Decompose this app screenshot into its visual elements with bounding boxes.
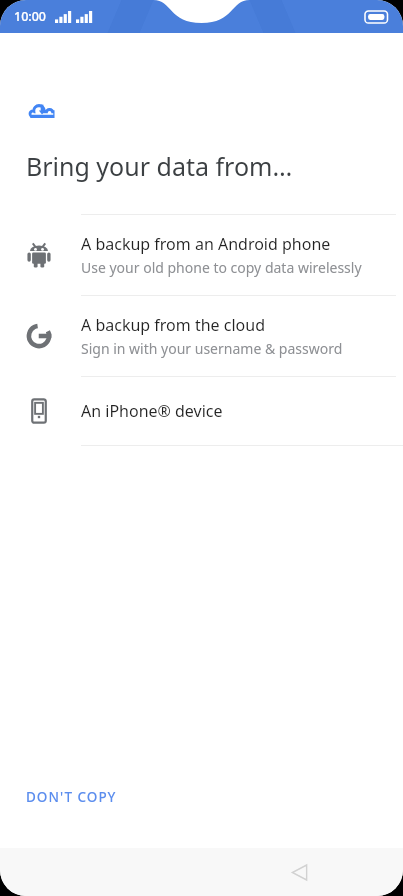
button[interactable]: DON'T COPY xyxy=(0,772,143,822)
staticText: Use your old phone to copy data wireless… xyxy=(81,258,362,277)
staticText: A backup from the cloud xyxy=(81,314,265,336)
staticText: A backup from an Android phone xyxy=(81,233,331,255)
button[interactable]: Back xyxy=(277,850,321,894)
button[interactable]: An iPhone® device xyxy=(0,377,403,445)
staticText: DON'T COPY xyxy=(26,788,117,806)
staticText: 10:00 xyxy=(14,8,47,25)
staticText: Bring your data from… xyxy=(26,149,293,183)
staticText: Sign in with your username & password xyxy=(81,339,343,358)
button[interactable]: A backup from the cloud xyxy=(0,296,403,376)
staticText: An iPhone® device xyxy=(81,400,223,422)
button[interactable]: A backup from an Android phone xyxy=(0,215,403,295)
